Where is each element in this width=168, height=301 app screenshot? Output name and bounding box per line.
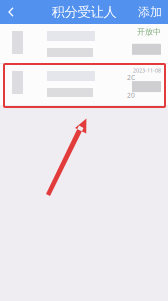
staticText: 2C [127,73,135,82]
staticText: 积分受让人 [51,4,116,20]
button[interactable]: Back [0,0,22,24]
button[interactable]: 添加 [138,0,168,24]
staticText: 添加 [138,5,162,19]
button[interactable]: 2023-11-08 [0,64,168,105]
staticText: 开放中 [137,27,161,37]
staticText: 2023-11-08 [133,67,161,74]
staticText: 20 [127,91,135,100]
button[interactable]: 开放中 [0,24,168,63]
